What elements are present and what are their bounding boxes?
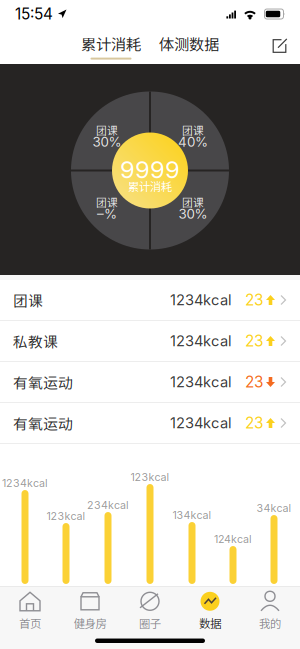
staticText: 数据 — [199, 615, 221, 631]
staticText: 团课 — [182, 194, 204, 210]
button[interactable]: 健身房 — [60, 586, 120, 631]
button[interactable]: 私教课 — [0, 321, 300, 362]
staticText: 累计消耗 — [128, 178, 172, 194]
staticText: 1234kcal — [170, 373, 232, 391]
staticText: 123kcal — [46, 509, 85, 522]
staticText: 1234kcal — [170, 291, 232, 309]
staticText: –% — [97, 206, 117, 222]
staticText: 15:54 — [15, 5, 53, 23]
button[interactable]: 有氧运动 — [0, 403, 300, 444]
staticText: 体测数据 — [159, 32, 219, 55]
staticText: 团课 — [13, 289, 43, 311]
button[interactable]: 圈子 — [120, 586, 180, 631]
staticText: 私教课 — [13, 330, 58, 352]
staticText: 23 — [245, 332, 263, 350]
staticText: 团课 — [182, 122, 204, 138]
button[interactable]: 首页 — [0, 586, 60, 631]
staticText: 团课 — [96, 122, 118, 138]
button[interactable]: 体测数据 — [156, 32, 222, 60]
staticText: 1234kcal — [170, 414, 232, 432]
staticText: 首页 — [19, 615, 41, 631]
staticText: 134kcal — [172, 508, 211, 521]
button[interactable]: 数据 — [180, 586, 240, 631]
staticText: 30% — [178, 206, 207, 222]
staticText: 30% — [92, 134, 121, 150]
staticText: 123kcal — [130, 470, 169, 483]
staticText: 40% — [178, 134, 208, 150]
staticText: 有氧运动 — [13, 371, 73, 393]
button[interactable]: 我的 — [240, 586, 300, 631]
staticText: 1234kcal — [2, 476, 48, 489]
staticText: 有氧运动 — [13, 412, 73, 434]
staticText: 23 — [245, 291, 263, 309]
button[interactable]: Edit — [259, 29, 300, 62]
staticText: 团课 — [96, 194, 118, 210]
button[interactable]: 累计消耗 — [78, 32, 144, 60]
button[interactable]: 有氧运动 — [0, 362, 300, 403]
staticText: 23 — [245, 373, 263, 391]
staticText: 234kcal — [87, 498, 129, 511]
staticText: 23 — [245, 414, 263, 432]
staticText: 34kcal — [256, 501, 291, 514]
staticText: 1234kcal — [170, 332, 232, 350]
button[interactable]: 团课 — [0, 280, 300, 321]
staticText: 9999 — [120, 155, 180, 184]
staticText: 健身房 — [73, 615, 106, 631]
staticText: 我的 — [259, 615, 281, 631]
staticText: 圈子 — [139, 615, 161, 631]
staticText: 累计消耗 — [81, 32, 141, 55]
staticText: 124kcal — [214, 532, 252, 545]
